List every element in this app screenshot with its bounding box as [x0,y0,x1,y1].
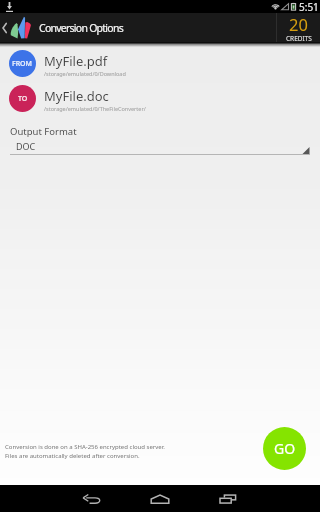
button[interactable]: DOC [10,140,310,155]
staticText: Conversion is done on a SHA-256 encrypte… [5,443,165,451]
staticText: MyFile.doc [44,87,109,105]
button[interactable]: 20 [277,13,320,42]
button[interactable]: Back [58,485,126,512]
staticText: DOC [16,140,36,152]
staticText: 5:51 [299,0,319,13]
staticText: /storage/emulated/0/Download [44,70,126,77]
staticText: Files are automatically deleted after co… [5,452,140,460]
staticText: 20 [289,13,308,35]
button[interactable]: Home [126,485,194,512]
button[interactable]: Recent apps [194,485,262,512]
button[interactable]: TO [0,81,320,116]
button[interactable]: GO [263,427,306,470]
button[interactable]: FROM [0,46,320,81]
staticText: TO [18,94,28,104]
staticText: Conversion Options [39,21,123,35]
staticText: GO [274,439,296,458]
staticText: MyFile.pdf [44,52,108,70]
staticText: CREDITS [286,34,312,41]
button[interactable]: Navigate up [0,13,32,42]
staticText: FROM [12,59,33,69]
staticText: Output Format [10,125,77,138]
staticText: /storage/emulated/0/TheFileConverter/ [44,105,146,112]
